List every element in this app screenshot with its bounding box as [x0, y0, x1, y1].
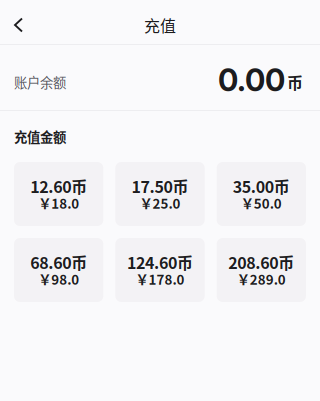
button[interactable]: 12.60币 — [14, 162, 103, 226]
staticText: ￥18.0 — [38, 193, 79, 213]
staticText: 币 — [287, 70, 303, 94]
staticText: 208.60币 — [228, 250, 294, 274]
button[interactable]: 17.50币 — [115, 162, 205, 226]
staticText: 124.60币 — [127, 250, 193, 274]
button[interactable]: 124.60币 — [115, 238, 205, 302]
staticText: ￥289.0 — [237, 269, 286, 289]
staticText: 68.60币 — [30, 250, 87, 274]
button[interactable]: 35.00币 — [217, 162, 306, 226]
staticText: 12.60币 — [30, 174, 87, 198]
button[interactable]: 208.60币 — [217, 238, 306, 302]
staticText: 35.00币 — [233, 174, 290, 198]
staticText: 充值 — [144, 13, 176, 37]
staticText: ￥98.0 — [38, 269, 79, 289]
button[interactable]: Back — [0, 6, 41, 44]
staticText: ￥178.0 — [135, 269, 184, 289]
staticText: 17.50币 — [131, 174, 188, 198]
staticText: ￥50.0 — [241, 193, 282, 213]
staticText: ￥25.0 — [139, 193, 180, 213]
staticText: 0.00 — [218, 61, 285, 98]
button[interactable]: 68.60币 — [14, 238, 103, 302]
staticText: 账户余额 — [14, 72, 66, 92]
staticText: 充值金额 — [14, 127, 66, 146]
